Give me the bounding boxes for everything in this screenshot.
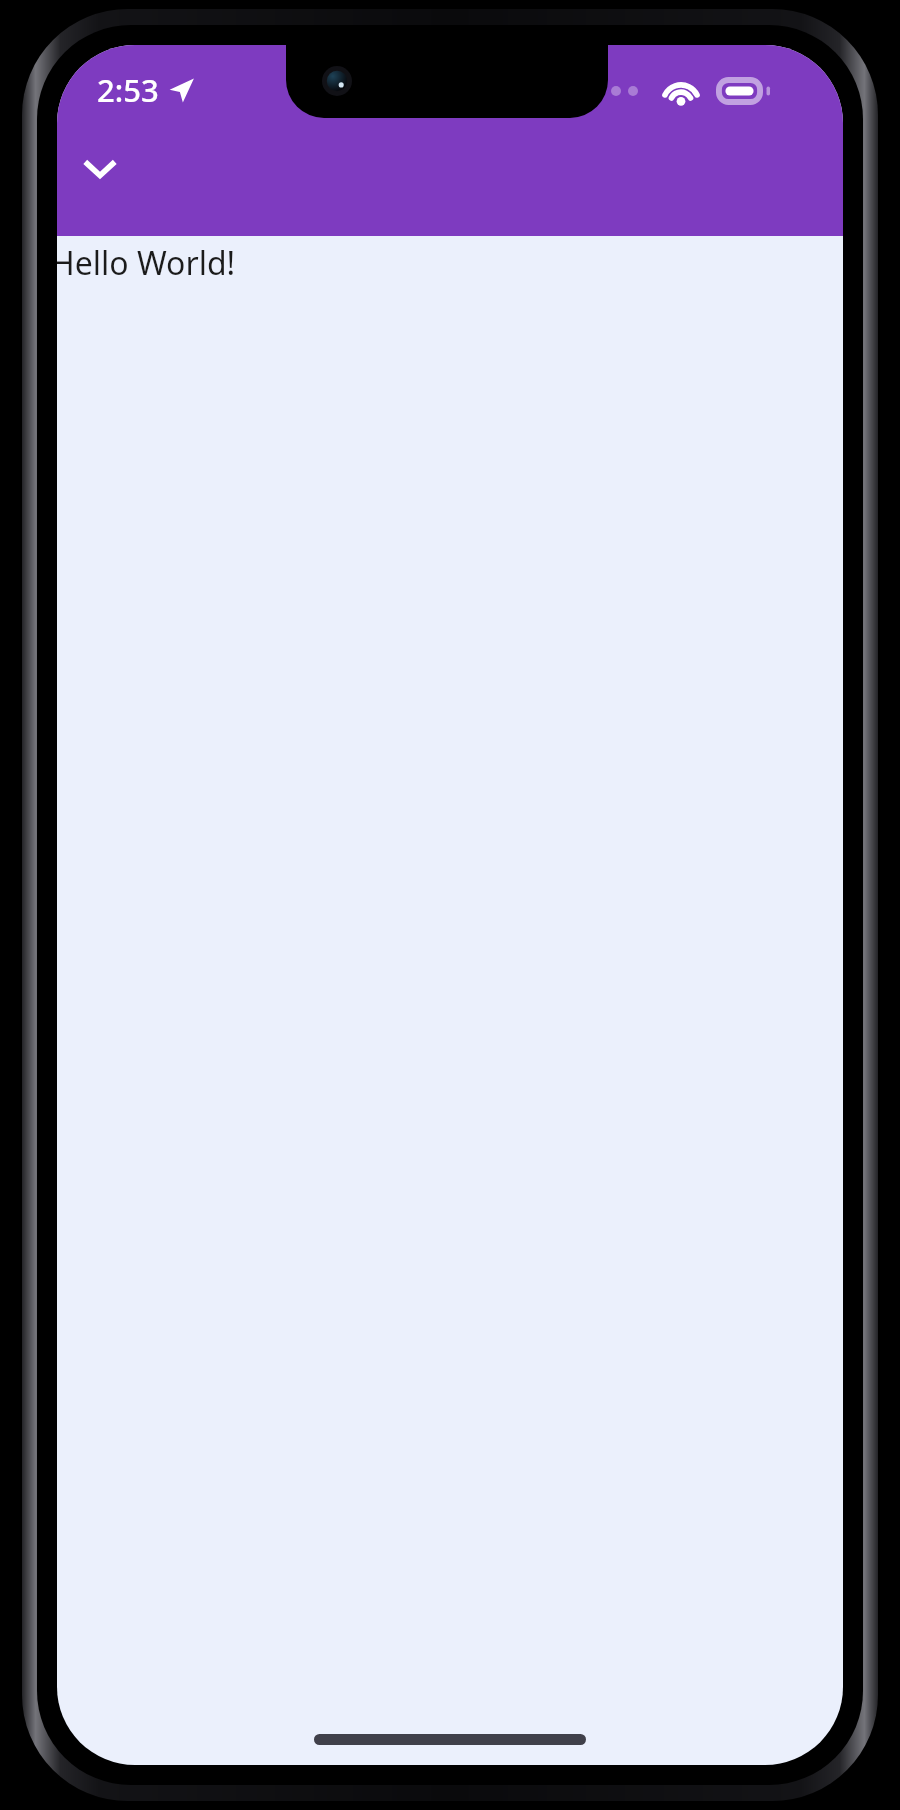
- button[interactable]: Collapse: [69, 137, 131, 199]
- staticText: 2:53: [97, 69, 159, 111]
- staticText: Hello World!: [57, 241, 236, 285]
